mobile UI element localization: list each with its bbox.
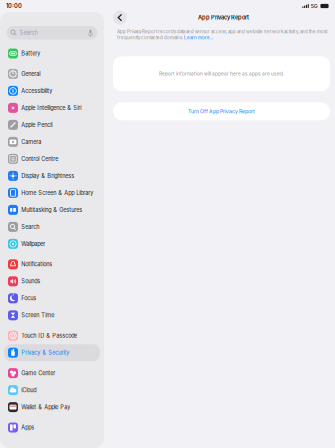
staticText: Camera (21, 138, 41, 145)
staticText: Screen Time (21, 312, 54, 319)
button[interactable]: Home Screen & App Library (4, 184, 100, 201)
staticText: 10:00 (6, 3, 22, 9)
button[interactable]: Back (113, 10, 127, 24)
button[interactable]: Notifications (4, 256, 100, 273)
staticText: Home Screen & App Library (21, 189, 93, 196)
staticText: Game Center (21, 370, 55, 376)
staticText: Report information will appear here as a… (159, 71, 284, 77)
staticText: Apple Intelligence & Siri (21, 104, 81, 111)
button[interactable]: Sounds (4, 273, 100, 290)
button[interactable]: Display & Brightness (4, 167, 100, 184)
staticText: Display & Brightness (21, 172, 74, 179)
button[interactable]: Game Center (4, 365, 100, 382)
staticText: General (21, 70, 40, 77)
staticText: Learn more... (184, 35, 213, 40)
staticText: Notifications (21, 261, 52, 268)
staticText: Search (19, 29, 37, 36)
button[interactable]: Control Centre (4, 150, 100, 167)
staticText: Sounds (21, 278, 40, 285)
button[interactable]: Touch ID & Passcode (4, 327, 100, 344)
staticText: Wallet & Apple Pay (21, 404, 70, 410)
staticText: iCloud (21, 387, 36, 393)
button[interactable]: Screen Time (4, 307, 100, 324)
staticText: Apps (21, 424, 34, 431)
staticText: Battery (21, 50, 40, 57)
button[interactable]: Wallpaper (4, 235, 100, 252)
staticText: Wallpaper (21, 240, 45, 247)
button[interactable]: Focus (4, 290, 100, 307)
staticText: frequently contacted domains. (117, 35, 184, 40)
button[interactable]: Privacy & Security (4, 344, 100, 361)
button[interactable]: Multitasking & Gestures (4, 201, 100, 218)
button[interactable]: Turn Off App Privacy Report (113, 102, 330, 120)
button[interactable]: Accessibility (4, 82, 100, 99)
staticText: Search (21, 223, 39, 230)
staticText: Multitasking & Gestures (21, 206, 82, 213)
button[interactable]: Search (4, 218, 100, 235)
button[interactable]: Camera (4, 133, 100, 150)
staticText: Privacy & Security (21, 349, 69, 356)
button[interactable]: Apple Intelligence & Siri (4, 99, 100, 116)
staticText: Accessibility (21, 87, 52, 94)
staticText: App Privacy Report (198, 14, 249, 21)
staticText: Apple Pencil (21, 121, 52, 128)
staticText: 5G (311, 3, 318, 9)
button[interactable]: Apps (4, 419, 100, 436)
button[interactable]: Battery (4, 45, 100, 62)
staticText: Control Centre (21, 155, 58, 162)
staticText: Focus (21, 295, 36, 302)
staticText: Turn Off App Privacy Report (188, 108, 255, 114)
button[interactable]: Wallet & Apple Pay (4, 399, 100, 416)
staticText: App Privacy Report records data and sens… (117, 29, 327, 34)
button[interactable]: iCloud (4, 382, 100, 399)
staticText: Touch ID & Passcode (21, 332, 77, 339)
button[interactable]: General (4, 65, 100, 82)
button[interactable]: Apple Pencil (4, 116, 100, 133)
